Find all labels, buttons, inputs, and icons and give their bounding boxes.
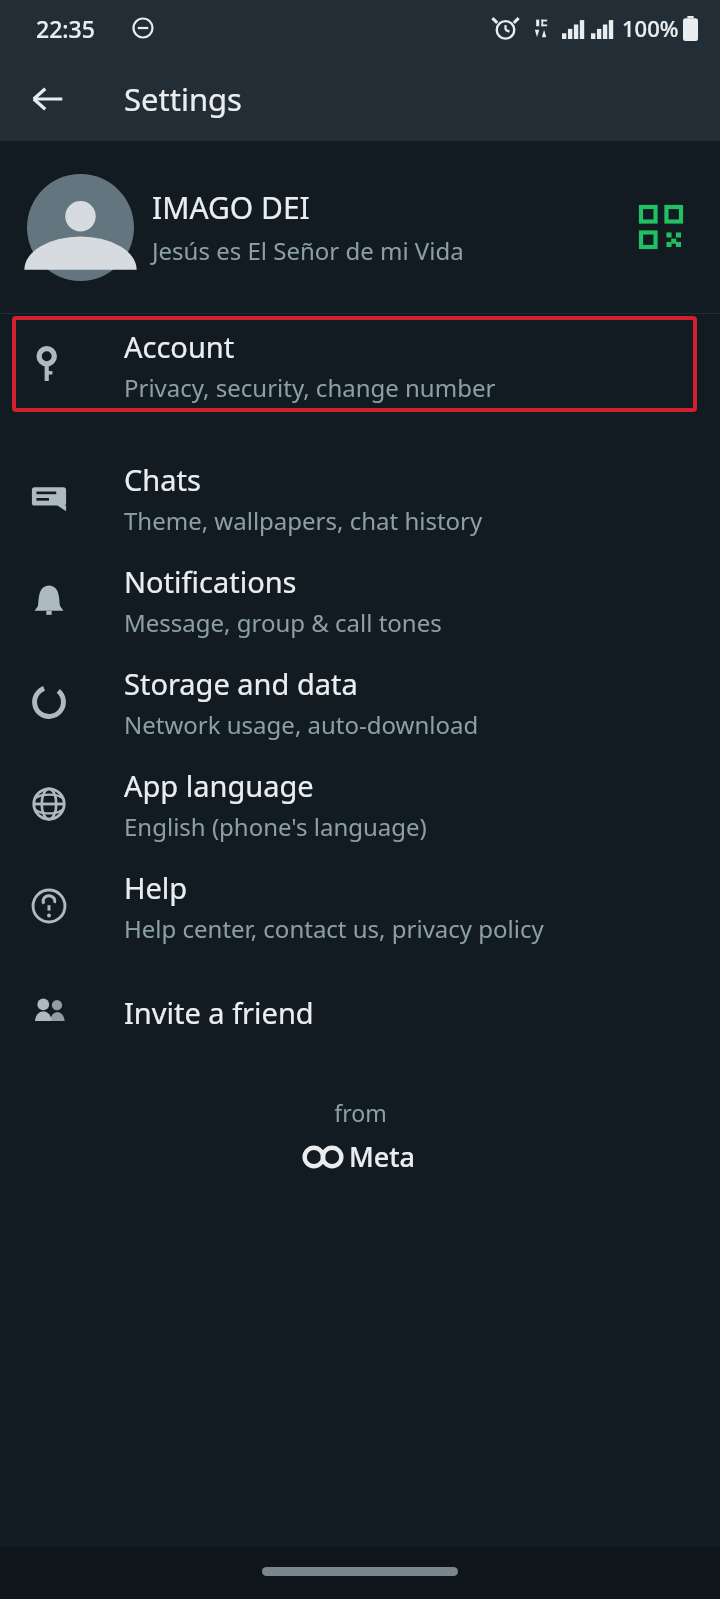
button[interactable]: Back [14,65,82,133]
staticText: IMAGO DEI [152,187,310,228]
staticText: Invite a friend [124,993,314,1032]
staticText: English (phone's language) [124,810,427,843]
staticText: Network usage, auto-download [124,708,479,741]
button[interactable]: Help [0,855,720,957]
staticText: 22:35 [36,13,95,44]
staticText: Storage and data [124,664,358,703]
staticText: Account [124,327,235,366]
button[interactable]: Chats [0,416,720,549]
staticText: from [334,1097,387,1128]
button[interactable]: Storage and data [0,651,720,753]
staticText: Jesús es El Señor de mi Vida [152,234,464,267]
staticText: Privacy, security, change number [124,371,496,404]
staticText: App language [124,766,314,805]
staticText: Chats [124,460,201,499]
button[interactable]: Invite a friend [0,957,720,1067]
button[interactable]: Notifications [0,549,720,651]
staticText: Settings [124,78,242,120]
staticText: Message, group & call tones [124,606,442,639]
button[interactable]: Account [0,314,720,416]
staticText: Meta [349,1138,416,1175]
staticText: 100% [622,13,679,43]
button[interactable]: IMAGO DEI [0,141,720,313]
staticText: Help [124,868,188,907]
button[interactable]: App language [0,753,720,855]
staticText: Help center, contact us, privacy policy [124,912,544,945]
button[interactable]: QR code [630,196,692,258]
staticText: Theme, wallpapers, chat history [124,504,483,537]
staticText: Notifications [124,562,297,601]
